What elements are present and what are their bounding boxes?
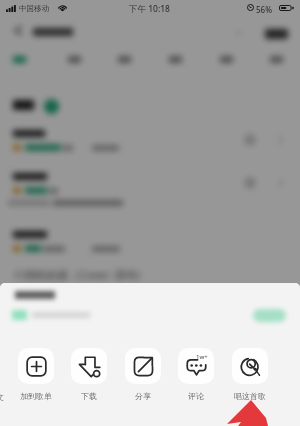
staticText: 下午 10:18 xyxy=(129,3,170,15)
button[interactable]: 下载 xyxy=(71,348,107,401)
staticText: 下载 xyxy=(81,391,97,401)
button[interactable]: 评论 xyxy=(178,348,214,401)
button[interactable]: 唱这首歌 xyxy=(232,348,268,401)
button[interactable]: 分享 xyxy=(125,348,161,401)
staticText: 加到歌单 xyxy=(20,391,52,401)
staticText: 唱这首歌 xyxy=(234,391,266,401)
staticText: 小跳蛙姑娘（Cover: 源伶) xyxy=(13,267,140,282)
button[interactable]: 加到歌单 xyxy=(18,348,54,401)
staticText: 评论 xyxy=(188,391,204,401)
staticText: 56% xyxy=(256,4,272,15)
staticText: 分享 xyxy=(135,391,151,401)
staticText: 1w+ xyxy=(196,353,208,361)
staticText: 中国移动 xyxy=(19,4,49,13)
staticText: 文 xyxy=(0,392,4,402)
